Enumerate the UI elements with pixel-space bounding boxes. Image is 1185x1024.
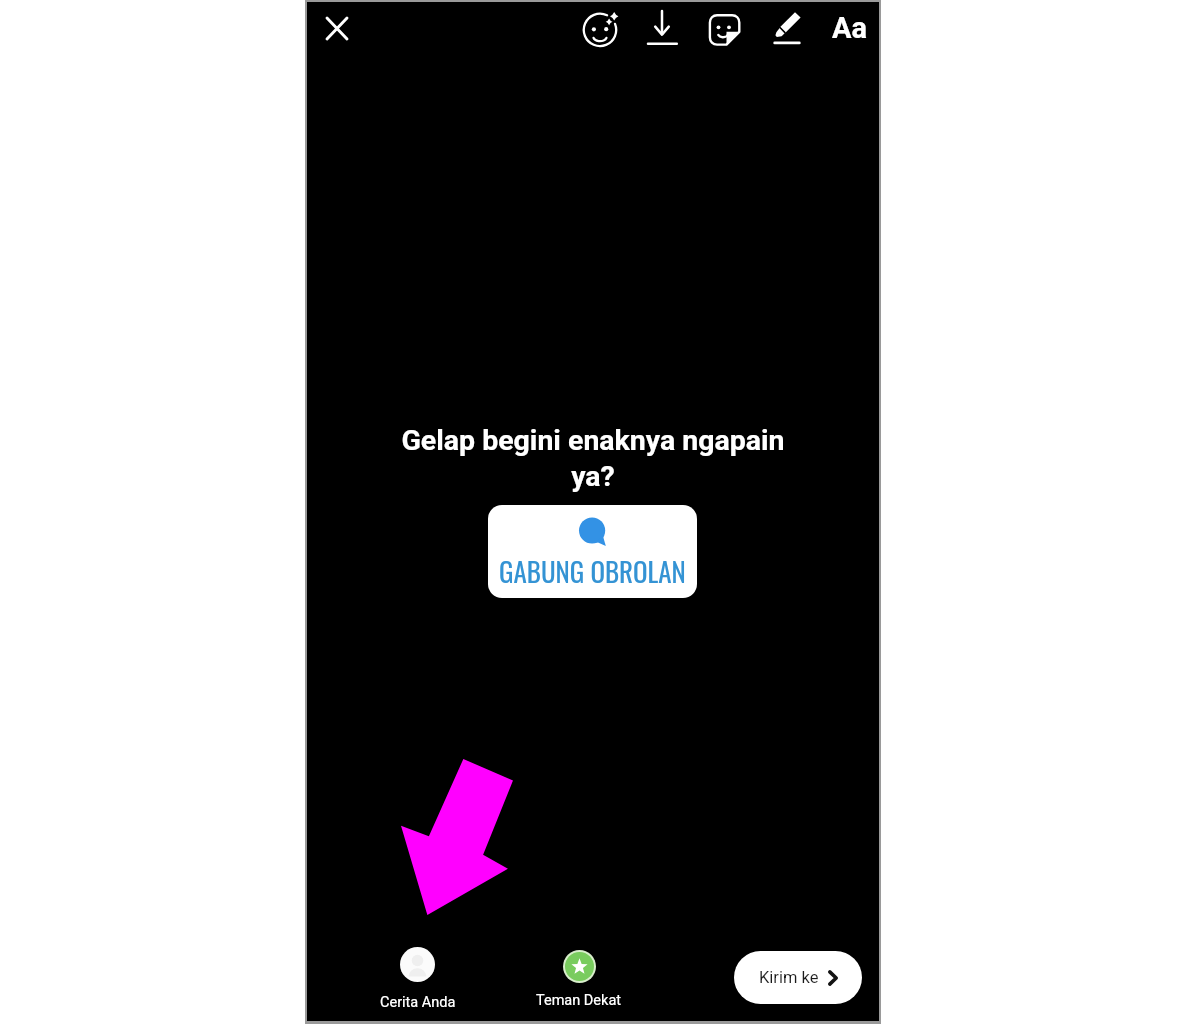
button[interactable]: Text: [828, 6, 872, 50]
button[interactable]: GABUNG OBROLAN: [488, 505, 697, 598]
staticText: Cerita Anda: [380, 994, 456, 1011]
staticText: Teman Dekat: [536, 992, 622, 1009]
staticText: Gelap begini enaknya ngapain ya?: [397, 424, 789, 493]
button[interactable]: Effects: [578, 8, 622, 52]
button[interactable]: Save: [640, 8, 684, 52]
staticText: GABUNG OBROLAN: [499, 551, 686, 591]
button[interactable]: Kirim ke: [734, 951, 862, 1004]
staticText: Kirim ke: [759, 968, 819, 987]
button[interactable]: Close: [315, 6, 359, 50]
staticText: Aa: [832, 11, 868, 45]
button[interactable]: Sticker: [702, 8, 746, 52]
button[interactable]: Teman Dekat: [519, 950, 639, 1009]
button[interactable]: Cerita Anda: [357, 947, 478, 1011]
button[interactable]: Draw: [765, 8, 809, 52]
